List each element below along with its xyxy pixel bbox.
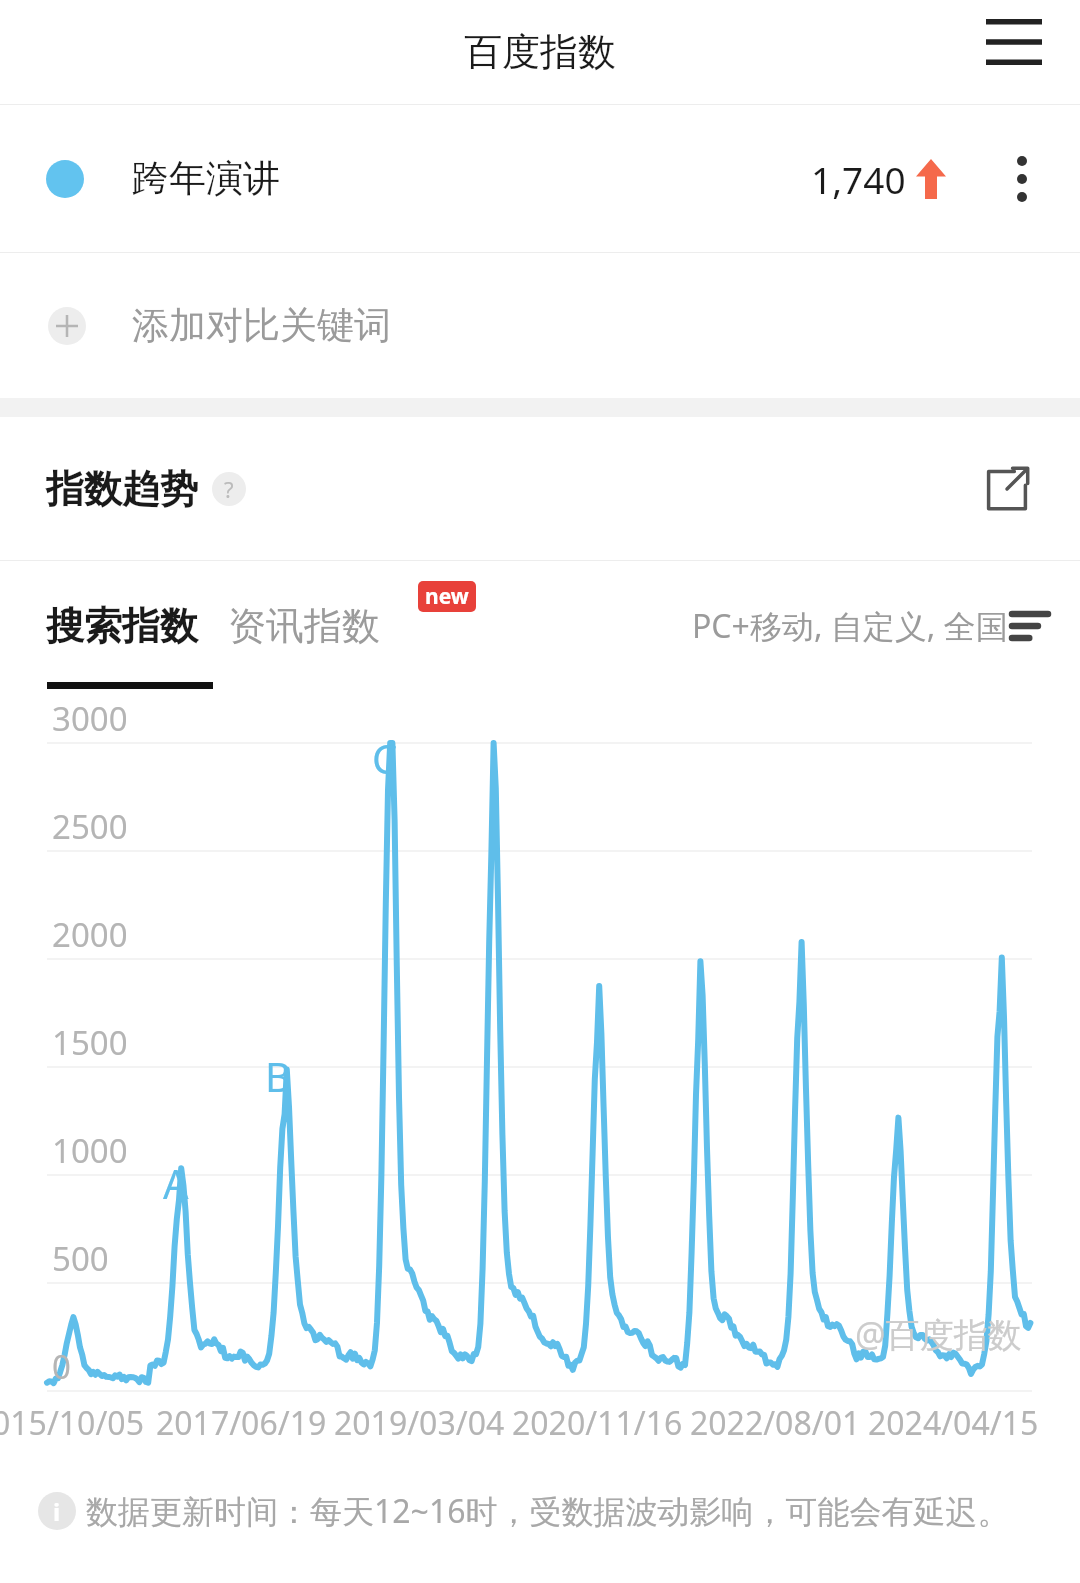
staticText: 1500 — [52, 1020, 128, 1065]
button[interactable]: 资讯指数 — [228, 584, 380, 668]
staticText: 2019/03/04 — [334, 1401, 505, 1445]
button[interactable]: 搜索指数 — [46, 584, 198, 668]
button[interactable]: PC+移动, 自定义, 全国 — [692, 588, 1048, 664]
staticText: 015/10/05 — [0, 1401, 144, 1445]
staticText: new — [425, 582, 469, 611]
staticText: 数据更新时间：每天12~16时，受数据波动影响，可能会有延迟。 — [86, 1489, 1010, 1533]
button[interactable]: Help — [212, 472, 246, 506]
staticText: B — [265, 1049, 291, 1103]
button[interactable]: 添加对比关键词 — [0, 253, 1080, 398]
staticText: 2500 — [52, 804, 128, 849]
staticText: 2020/11/16 — [512, 1401, 683, 1445]
staticText: 2017/06/19 — [156, 1401, 327, 1445]
staticText: 1000 — [52, 1128, 128, 1173]
staticText: 500 — [52, 1236, 109, 1281]
button[interactable]: More options — [994, 151, 1050, 207]
staticText: 1,740 — [811, 154, 906, 204]
staticText: i — [53, 1495, 61, 1528]
staticText: 2022/08/01 — [690, 1401, 861, 1445]
staticText: 3000 — [52, 696, 128, 741]
staticText: 搜索指数 — [46, 602, 198, 650]
button[interactable]: 跨年演讲 — [0, 105, 1080, 252]
staticText: 0 — [52, 1344, 71, 1389]
staticText: 添加对比关键词 — [132, 302, 391, 349]
staticText: 指数趋势 — [46, 465, 198, 513]
staticText: 2024/04/15 — [868, 1401, 1039, 1445]
staticText: @百度指数 — [855, 1311, 1022, 1357]
button[interactable]: Open in full screen — [976, 458, 1038, 520]
staticText: 跨年演讲 — [132, 155, 280, 202]
staticText: 百度指数 — [464, 28, 616, 76]
staticText: 2000 — [52, 912, 128, 957]
staticText: PC+移动, 自定义, 全国 — [692, 604, 1008, 648]
staticText: A — [163, 1156, 189, 1210]
button[interactable]: Menu — [978, 6, 1050, 78]
staticText: 资讯指数 — [228, 602, 380, 650]
staticText: C — [372, 731, 398, 785]
staticText: ? — [224, 474, 234, 504]
